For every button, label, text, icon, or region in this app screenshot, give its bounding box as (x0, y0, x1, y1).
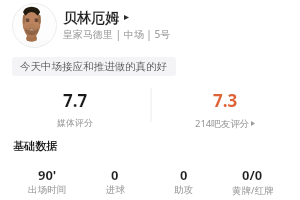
staticText: 0 (111, 166, 119, 184)
staticText: 今天中场接应和推进做的真的好 (20, 60, 167, 73)
staticText: 贝林厄姆 (63, 10, 119, 28)
button[interactable]: 90' (13, 166, 81, 196)
button[interactable]: 0/0 (218, 166, 287, 197)
staticText: 进球 (106, 184, 125, 196)
staticText: 黄牌/红牌 (232, 184, 274, 197)
button[interactable]: 7.3 (150, 89, 300, 130)
button[interactable]: 0 (81, 166, 149, 196)
button[interactable]: 0 (149, 166, 218, 196)
staticText: 助攻 (174, 184, 193, 196)
staticText: 90' (38, 166, 57, 184)
staticText: 7.7 (63, 89, 88, 112)
button[interactable]: 贝林厄姆 (63, 10, 129, 28)
button[interactable]: 214吧友评分 (195, 117, 255, 130)
button[interactable]: 7.7 (0, 89, 150, 128)
staticText: 媒体评分 (57, 117, 93, 128)
staticText: 皇家马德里 | 中场 | 5号 (63, 27, 171, 41)
staticText: 出场时间 (28, 184, 66, 196)
staticText: 214吧友评分 (195, 117, 250, 130)
staticText: 基础数据 (13, 139, 57, 153)
staticText: 0/0 (242, 166, 263, 184)
button[interactable]: Player photo (12, 3, 57, 48)
button[interactable]: 今天中场接应和推进做的真的好 (12, 57, 176, 76)
staticText: 0 (180, 166, 188, 184)
staticText: 7.3 (213, 89, 238, 112)
